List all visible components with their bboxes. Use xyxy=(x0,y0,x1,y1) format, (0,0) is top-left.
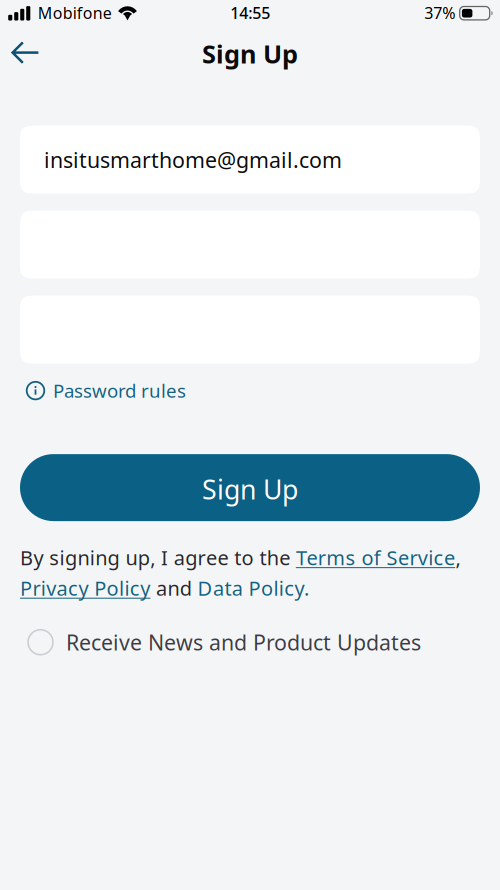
button[interactable]: Password rules xyxy=(0,374,500,408)
staticText: Sign Up xyxy=(202,471,298,507)
staticText: 37% xyxy=(424,2,455,23)
staticText: 14:55 xyxy=(230,2,270,23)
button[interactable]: Sign Up xyxy=(20,454,480,521)
button[interactable]: Back xyxy=(0,26,54,73)
button[interactable]: Receive News and Product Updates xyxy=(0,623,500,661)
staticText: Password rules xyxy=(53,378,186,403)
staticText: Sign Up xyxy=(202,37,298,70)
staticText: Mobifone xyxy=(38,2,112,23)
button[interactable]: insitusmarthome@gmail.com xyxy=(20,126,480,194)
staticText: Receive News and Product Updates xyxy=(66,628,421,656)
staticText: By signing up, I agree to the Terms of S… xyxy=(20,544,460,601)
staticText: insitusmarthome@gmail.com xyxy=(44,145,342,174)
